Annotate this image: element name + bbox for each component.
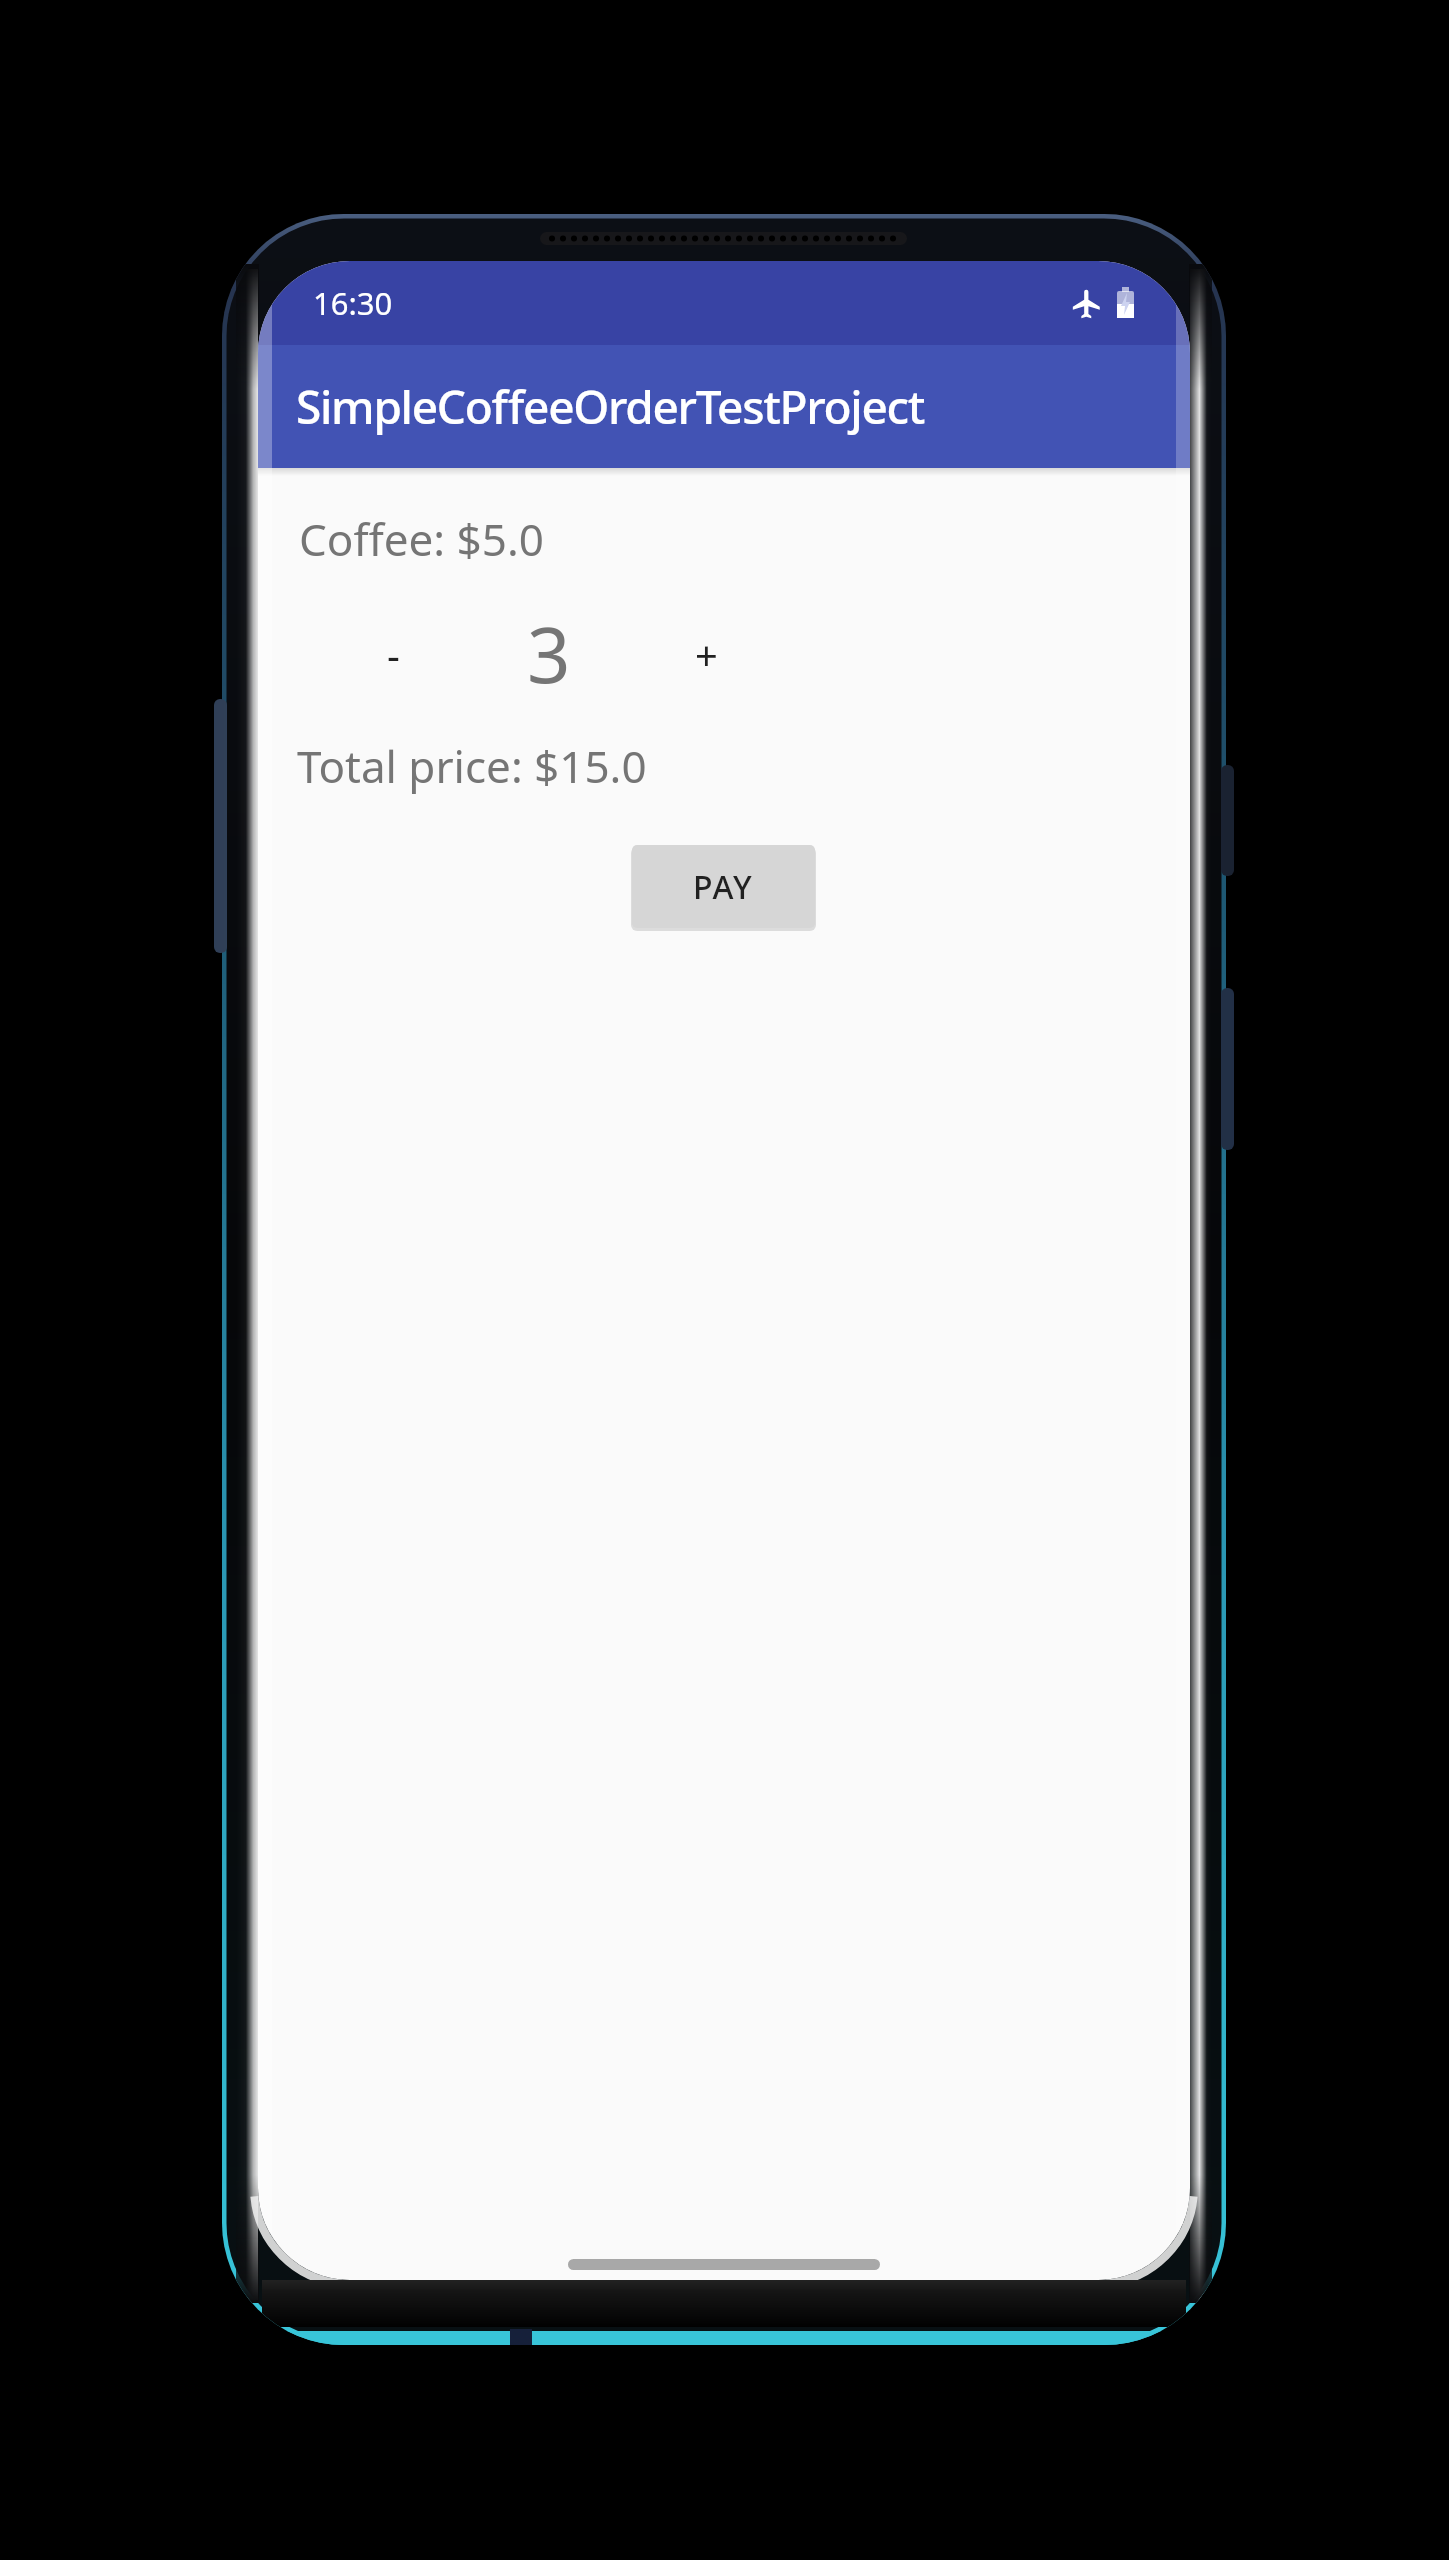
staticText: Coffee: $5.0 [299,509,544,569]
staticText: - [387,627,400,681]
staticText: Total price: $15.0 [297,736,647,796]
staticText: + [695,627,718,681]
staticText: SimpleCoffeeOrderTestProject [296,375,925,438]
staticText: PAY [693,865,754,909]
staticText: 16:30 [313,282,393,324]
button[interactable]: - [353,594,433,714]
staticText: 3 [527,602,571,706]
button[interactable]: PAY [632,845,815,928]
button[interactable]: + [666,594,746,714]
